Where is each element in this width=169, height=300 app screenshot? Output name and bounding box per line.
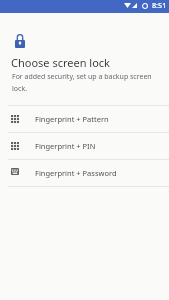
button[interactable]: Fingerprint plus password xyxy=(0,160,169,186)
other: Screen lock xyxy=(15,34,25,48)
staticText: Fingerprint + Password xyxy=(35,168,117,178)
button[interactable]: Fingerprint plus PIN xyxy=(0,133,169,159)
staticText: For added security, set up a backup scre… xyxy=(12,72,158,93)
button[interactable]: Fingerprint plus pattern xyxy=(0,106,169,132)
staticText: Fingerprint + Pattern xyxy=(35,114,109,124)
staticText: Choose screen lock xyxy=(11,55,110,70)
staticText: Fingerprint + PIN xyxy=(35,141,96,151)
staticText: 8:51 xyxy=(152,0,167,10)
